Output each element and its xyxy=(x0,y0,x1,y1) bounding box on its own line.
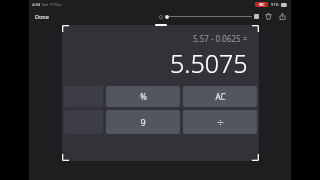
staticText: 5.57 - 0.0625 = xyxy=(193,33,248,44)
staticText: 91% xyxy=(271,2,279,7)
staticText: REC xyxy=(259,3,265,7)
button[interactable]: % xyxy=(106,86,180,107)
button[interactable]: 9 xyxy=(106,110,180,134)
button[interactable]: Done xyxy=(33,11,51,22)
button[interactable]: Divide xyxy=(183,110,257,134)
staticText: % xyxy=(140,91,147,102)
button[interactable]: AC xyxy=(183,86,257,107)
staticText: 9 xyxy=(140,116,146,128)
staticText: Done xyxy=(35,13,49,20)
button[interactable]: Zoom slider xyxy=(159,14,259,19)
button[interactable]: Share xyxy=(278,12,287,21)
staticText: Sat 17 Dec xyxy=(42,2,62,7)
staticText: AC xyxy=(215,91,226,102)
staticText: 5.5075 xyxy=(170,46,248,80)
button[interactable]: Delete xyxy=(264,12,273,21)
staticText: 4:04 xyxy=(32,2,40,7)
